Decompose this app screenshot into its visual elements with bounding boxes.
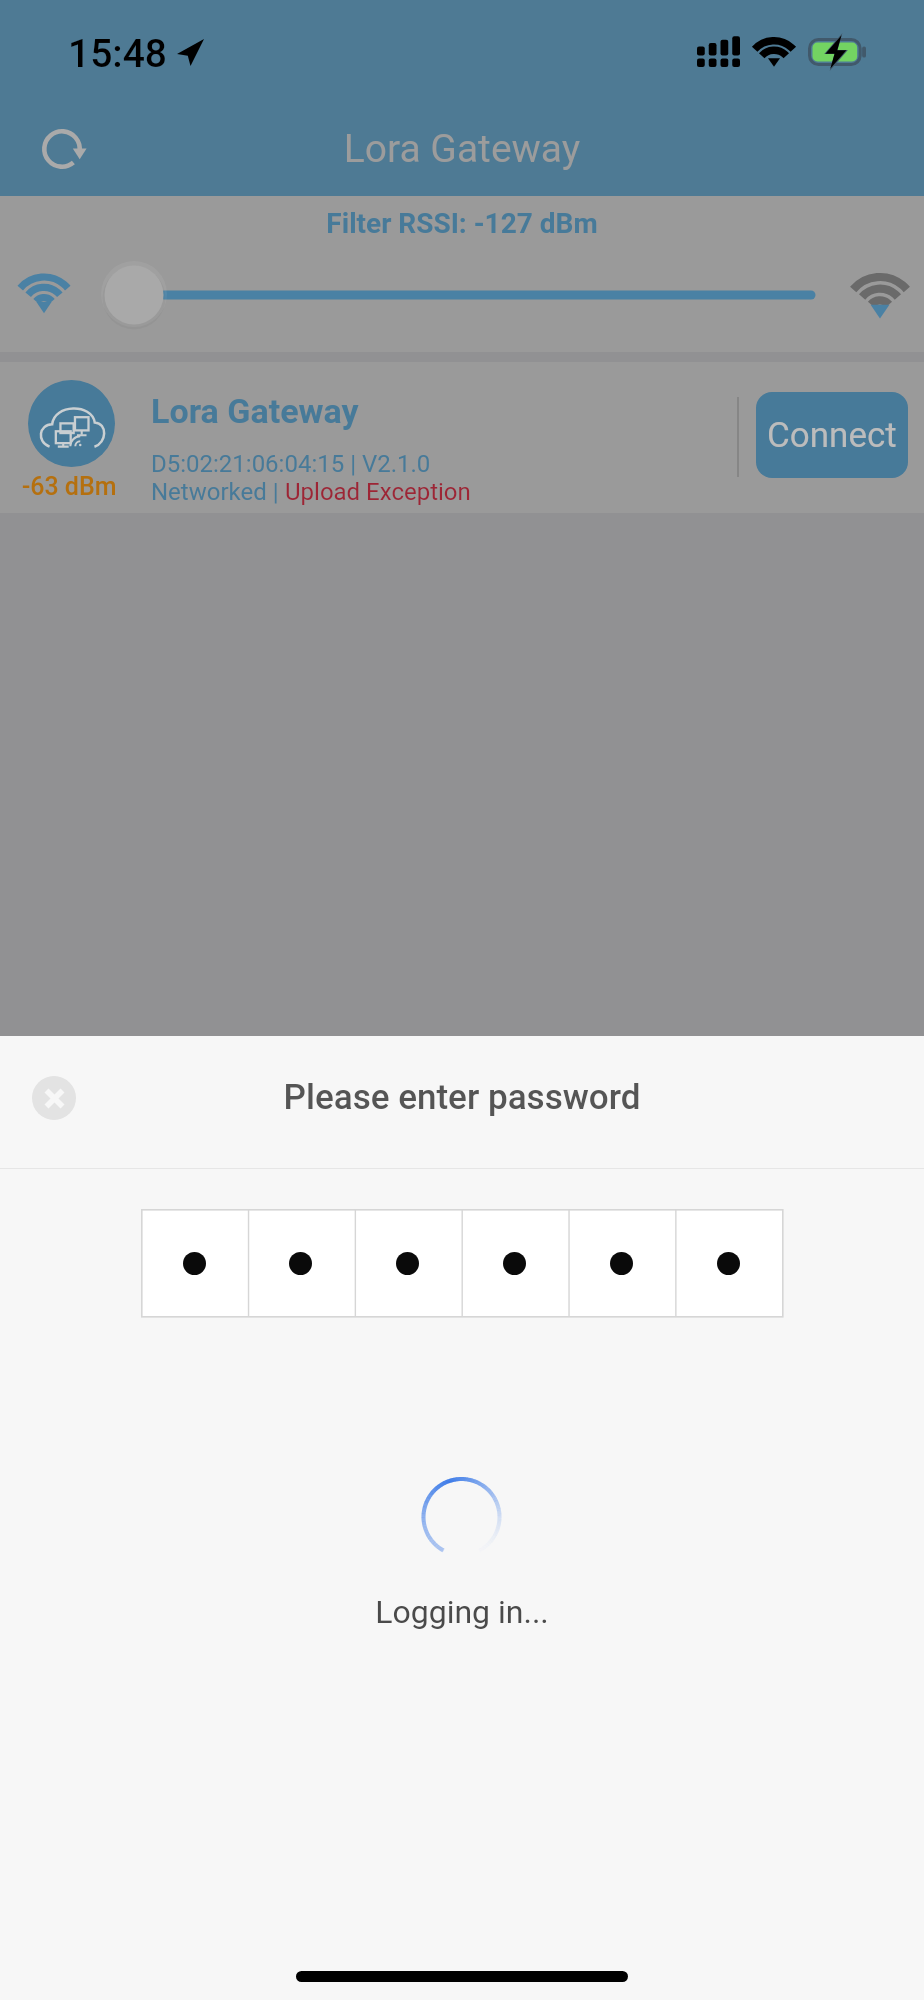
staticText: 15:48 (68, 31, 168, 77)
button[interactable]: Connect (756, 392, 908, 478)
button[interactable]: Refresh (31, 114, 101, 184)
staticText: D5:02:21:06:04:15 | V2.1.0 (151, 450, 431, 478)
staticText: Upload Exception (285, 478, 471, 506)
staticText: Please enter password (0, 1077, 924, 1118)
staticText: Lora Gateway (0, 126, 924, 172)
button[interactable]: Close (32, 1076, 76, 1120)
staticText: -63 dBm (22, 472, 117, 501)
staticText: Filter RSSI: -127 dBm (0, 207, 924, 240)
staticText: Logging in... (0, 1593, 924, 1631)
staticText: Connect (767, 415, 897, 456)
staticText: Lora Gateway (151, 391, 359, 431)
staticText: Networked | (151, 478, 285, 506)
